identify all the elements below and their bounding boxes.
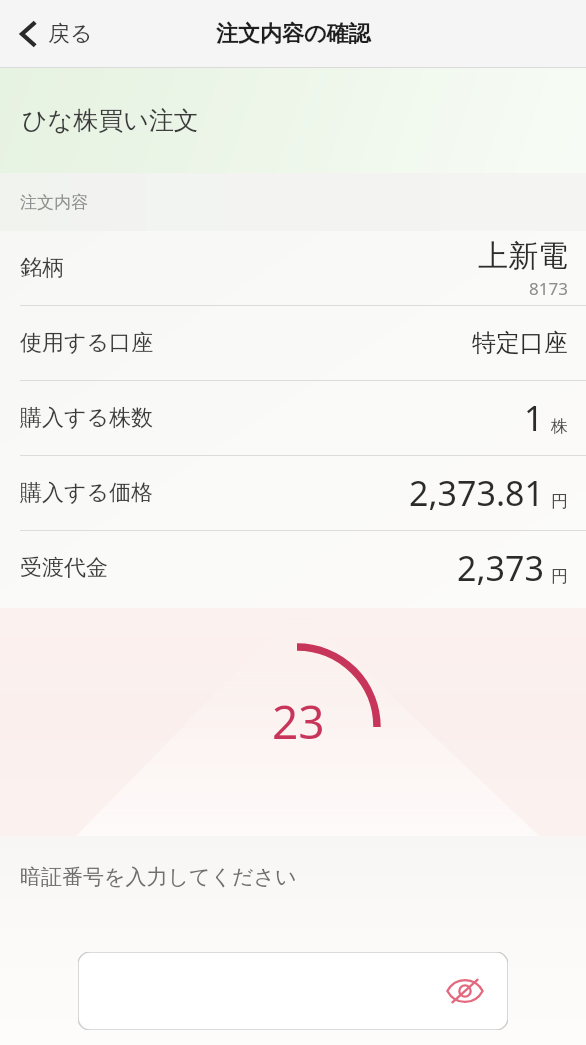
button[interactable]: 戻る: [10, 12, 101, 56]
staticText: 上新電: [478, 237, 568, 275]
staticText: 購入する株数: [20, 404, 154, 432]
staticText: 2,373: [457, 545, 544, 591]
staticText: 2,373.81: [409, 470, 544, 516]
staticText: 8173: [529, 277, 568, 300]
button[interactable]: Show password: [78, 952, 508, 1030]
staticText: 戻る: [48, 20, 93, 48]
staticText: 暗証番号を入力してください: [20, 864, 297, 890]
staticText: 購入する価格: [20, 479, 154, 507]
staticText: 23: [272, 690, 325, 753]
button[interactable]: 受渡代金: [0, 531, 586, 605]
button[interactable]: 銘柄: [0, 231, 586, 305]
staticText: 株: [551, 416, 568, 437]
button[interactable]: 使用する口座: [0, 306, 586, 380]
staticText: ひな株買い注文: [22, 105, 199, 136]
staticText: 使用する口座: [20, 329, 154, 357]
staticText: 円: [551, 491, 568, 512]
staticText: 円: [551, 566, 568, 587]
button[interactable]: 購入する価格: [0, 456, 586, 530]
staticText: 特定口座: [472, 328, 568, 358]
staticText: 受渡代金: [20, 554, 108, 582]
button[interactable]: Show password: [444, 970, 486, 1012]
staticText: 銘柄: [20, 254, 64, 282]
button[interactable]: 購入する株数: [0, 381, 586, 455]
staticText: 注文内容の確認: [216, 20, 371, 48]
staticText: 注文内容: [20, 192, 88, 213]
staticText: 1: [524, 395, 544, 441]
